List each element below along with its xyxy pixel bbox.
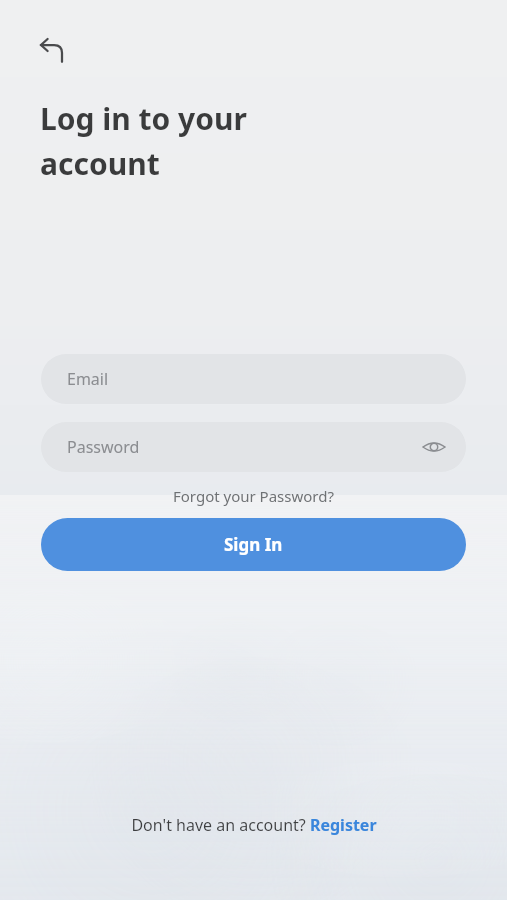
staticText: Password xyxy=(67,436,140,458)
staticText: Log in to your account xyxy=(40,98,247,183)
button[interactable]: Sign In xyxy=(41,518,466,571)
staticText: Forgot your Password? xyxy=(173,486,334,506)
button[interactable]: Show password xyxy=(416,429,452,465)
button[interactable]: Forgot your Password? xyxy=(0,486,507,506)
staticText: Email xyxy=(67,368,109,390)
button[interactable]: Password xyxy=(41,422,466,472)
button[interactable]: Don't have an account? Register xyxy=(0,814,507,836)
button[interactable]: Back xyxy=(32,30,74,72)
button[interactable]: Email xyxy=(41,354,466,404)
staticText: Sign In xyxy=(224,533,283,556)
staticText: Don't have an account? Register xyxy=(131,814,377,836)
